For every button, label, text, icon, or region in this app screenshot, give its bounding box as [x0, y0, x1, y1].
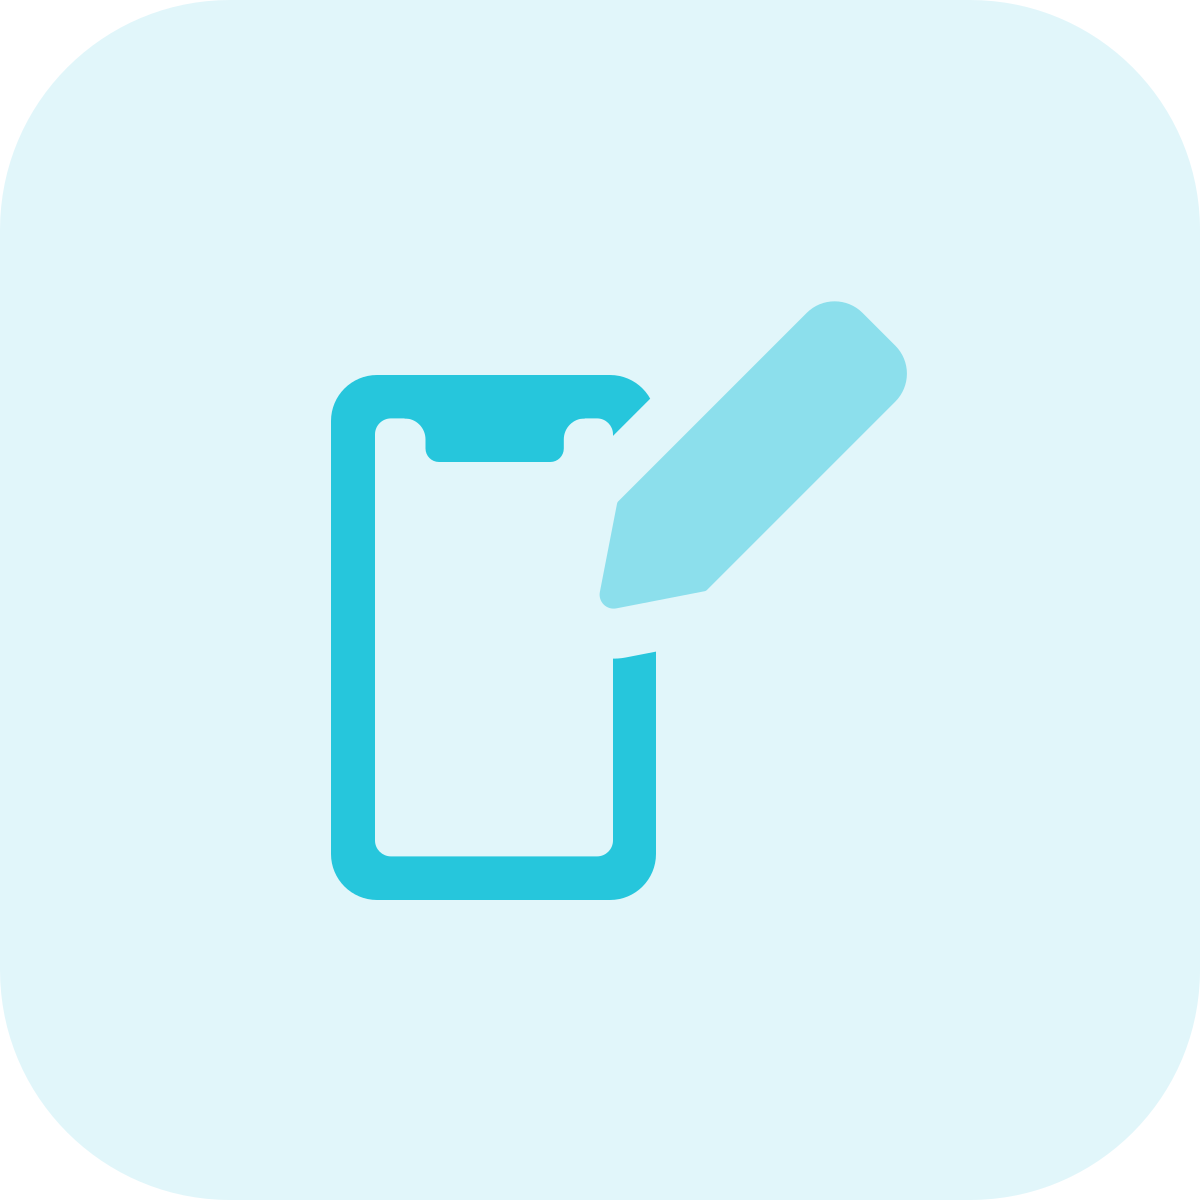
button[interactable]: Compose: [0, 0, 1200, 1200]
